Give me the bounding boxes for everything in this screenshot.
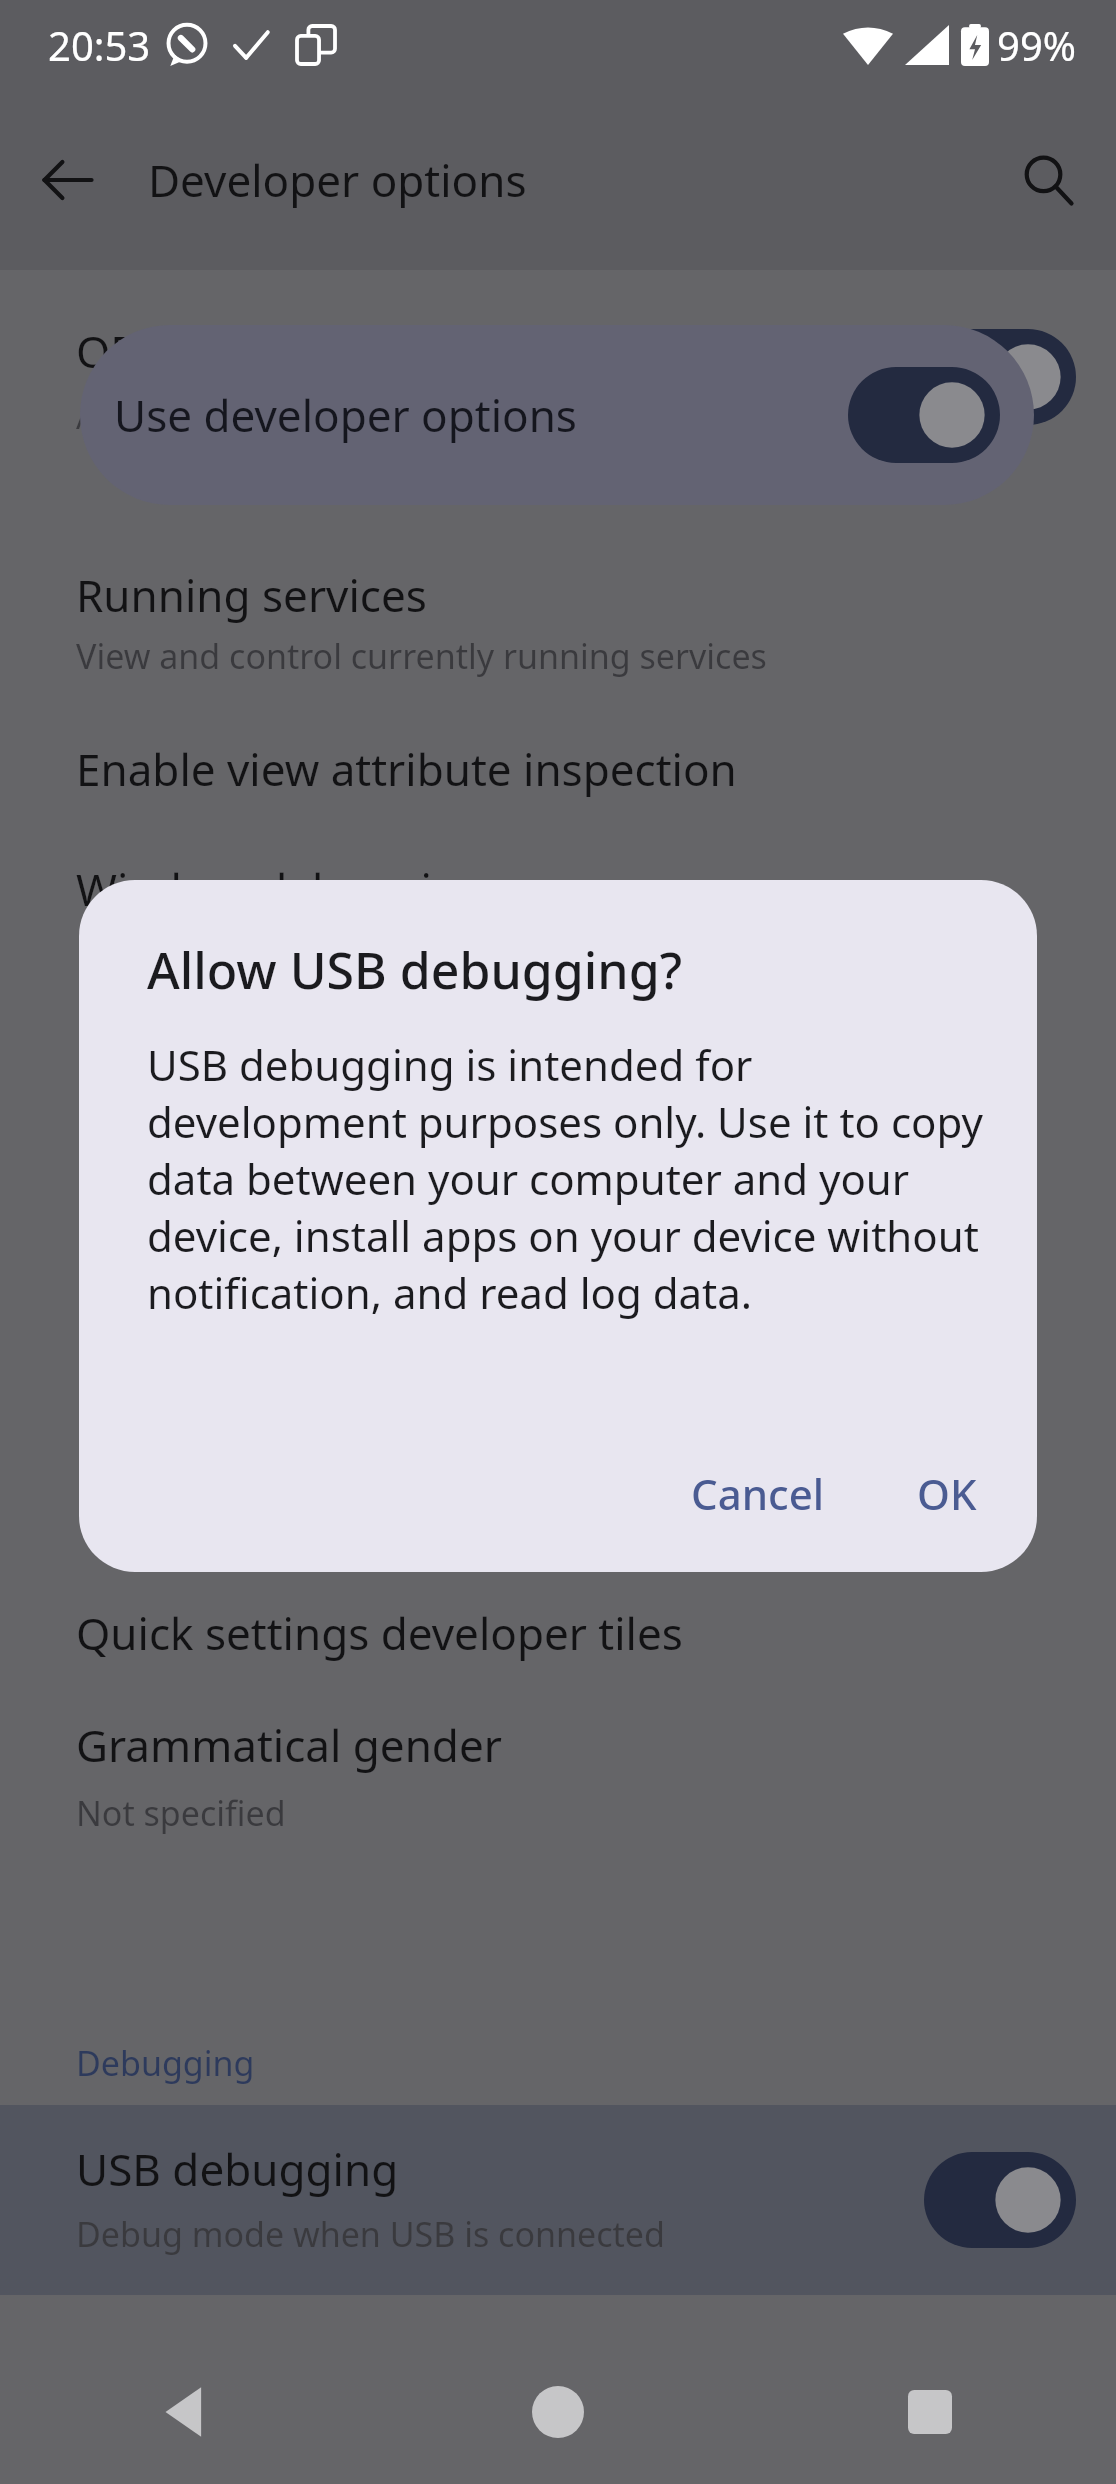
staticText: View and control currently running servi… xyxy=(76,633,767,679)
button[interactable]: Back xyxy=(26,138,110,222)
staticText: Use developer options xyxy=(114,385,577,445)
staticText: USB debugging is intended for developmen… xyxy=(147,1036,987,1321)
staticText: USB debugging xyxy=(76,2139,399,2199)
staticText: Debugging xyxy=(76,2040,255,2086)
button[interactable]: Home xyxy=(372,2340,744,2484)
staticText: Debug mode when USB is connected xyxy=(76,2211,665,2257)
staticText: Grammatical gender xyxy=(76,1715,502,1775)
staticText: Cancel xyxy=(691,1465,825,1522)
button[interactable]: Use developer options xyxy=(80,325,1034,505)
staticText: Quick settings developer tiles xyxy=(76,1603,683,1663)
staticText: 20:53 xyxy=(48,18,151,72)
staticText: OK xyxy=(917,1465,977,1522)
staticText: Wireless debugging xyxy=(76,859,486,919)
staticText: Not specified xyxy=(76,1790,286,1836)
button[interactable]: USB debugging xyxy=(0,2105,1116,2295)
button[interactable]: Search xyxy=(1006,138,1090,222)
button[interactable]: Back xyxy=(0,2340,372,2484)
staticText: Running services xyxy=(76,565,427,625)
staticText: Allow USB debugging? xyxy=(147,936,682,1004)
staticText: OEM unlocking xyxy=(76,321,389,381)
button[interactable]: Running services xyxy=(0,565,1116,679)
staticText: 99% xyxy=(997,18,1076,72)
staticText: Allow the bootloader to be unlocked xyxy=(76,393,655,439)
staticText: Debug mode when Wi‑Fi is connected xyxy=(76,927,677,973)
staticText: Developer options xyxy=(148,150,527,210)
button[interactable]: Wireless debugging xyxy=(0,859,1116,973)
button[interactable]: Recents xyxy=(744,2340,1116,2484)
staticText: Enable view attribute inspection xyxy=(76,739,737,799)
button[interactable]: Enable view attribute inspection xyxy=(0,739,1116,799)
button[interactable]: OK xyxy=(881,1439,1013,1548)
button[interactable]: Cancel xyxy=(655,1439,861,1548)
